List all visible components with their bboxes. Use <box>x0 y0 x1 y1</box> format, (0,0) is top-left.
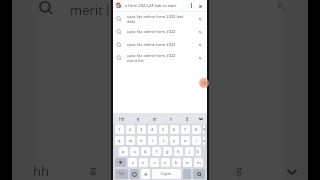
staticText: merit l <box>70 1 110 19</box>
button[interactable]: k <box>196 147 201 156</box>
staticText: 7 <box>184 127 187 132</box>
staticText: c <box>154 160 156 165</box>
staticText: र <box>170 116 172 122</box>
button[interactable]: Change language <box>141 169 150 179</box>
button[interactable]: ह <box>130 113 147 124</box>
staticText: hh <box>33 162 50 180</box>
button[interactable]: 1 <box>115 125 124 134</box>
button[interactable]: n <box>183 158 192 167</box>
staticText: upsc fac online form 2022 <box>127 53 176 58</box>
staticText: 9 <box>203 127 205 132</box>
button[interactable]: h <box>174 147 183 156</box>
button[interactable]: s <box>130 147 139 156</box>
button[interactable]: Insert suggestion <box>196 15 204 23</box>
button[interactable]: v <box>161 158 170 167</box>
button[interactable]: r <box>148 136 157 145</box>
button[interactable]: f <box>152 147 161 156</box>
button[interactable]: Insert suggestion <box>196 54 204 62</box>
staticText: r <box>152 138 154 143</box>
button[interactable]: 3 <box>137 125 146 134</box>
staticText: ढ <box>90 163 97 178</box>
button[interactable]: 7 <box>181 125 190 134</box>
staticText: 3 <box>140 127 143 132</box>
button[interactable]: e form 2023-24 kab se start <box>113 0 207 11</box>
button[interactable]: z <box>128 158 137 167</box>
button[interactable]: u <box>181 136 190 145</box>
button[interactable]: Insert suggestion <box>196 28 204 36</box>
button[interactable]: 2 <box>126 125 135 134</box>
staticText: q <box>118 138 121 143</box>
staticText: 6 <box>173 127 176 132</box>
button[interactable]: 9 <box>203 125 205 134</box>
button[interactable]: upsc fac online form 2022 <box>113 38 207 51</box>
button[interactable]: . <box>183 169 191 179</box>
button[interactable]: ?123 <box>115 169 128 179</box>
button[interactable]: c <box>150 158 159 167</box>
staticText: i <box>196 138 198 143</box>
button[interactable]: upsc fac online form 2022 last <box>113 12 207 25</box>
staticText: 8 <box>195 127 198 132</box>
button[interactable]: 8 <box>192 125 201 134</box>
staticText: z <box>132 160 134 165</box>
button[interactable]: t <box>159 136 168 145</box>
staticText: m <box>197 160 201 165</box>
button[interactable]: e <box>137 136 146 145</box>
button[interactable]: j <box>185 147 194 156</box>
button[interactable]: m <box>194 158 203 167</box>
button[interactable]: 4 <box>148 125 157 134</box>
staticText: 4 <box>151 127 154 132</box>
staticText: h <box>177 149 180 154</box>
button[interactable]: i <box>192 136 201 145</box>
button[interactable]: Emoji <box>130 169 139 179</box>
button[interactable]: Shift <box>115 158 126 167</box>
staticText: upsc fac online form 2022 <box>127 42 176 47</box>
staticText: ह <box>137 116 140 122</box>
button[interactable]: d <box>141 147 150 156</box>
button[interactable]: q <box>115 136 124 145</box>
staticText: हा <box>153 116 157 122</box>
button[interactable]: Space <box>152 169 181 179</box>
button[interactable]: Expand suggestions <box>195 113 207 124</box>
staticText: English <box>161 172 172 176</box>
staticText: hh <box>119 116 125 122</box>
staticText: t <box>163 138 165 143</box>
staticText: o <box>203 138 205 143</box>
staticText: g <box>166 149 169 154</box>
button[interactable]: y <box>170 136 179 145</box>
staticText: upsc fac online form 2022 last <box>127 14 184 19</box>
staticText: k <box>197 149 200 154</box>
staticText: merit list <box>127 58 144 63</box>
button[interactable]: Clear search <box>196 2 204 10</box>
staticText: x <box>142 160 145 165</box>
button[interactable]: 5 <box>159 125 168 134</box>
button[interactable]: upsc fac online form 2022 <box>113 25 207 38</box>
staticText: date <box>127 19 136 24</box>
button[interactable]: b <box>172 158 181 167</box>
button[interactable]: upsc fac online form 2022 <box>113 51 207 64</box>
staticText: u <box>184 138 187 143</box>
staticText: d <box>144 149 147 154</box>
button[interactable]: हा <box>147 113 163 124</box>
staticText: upsc fac online form 2022 <box>127 29 176 34</box>
staticText: y <box>173 138 176 143</box>
button[interactable]: Search <box>193 169 205 179</box>
staticText: w <box>129 138 133 143</box>
staticText: 5 <box>162 127 165 132</box>
button[interactable]: Insert suggestion <box>196 41 204 49</box>
staticText: b <box>175 160 178 165</box>
button[interactable]: w <box>126 136 135 145</box>
staticText: n <box>186 160 189 165</box>
staticText: . <box>186 172 188 177</box>
staticText: ?123 <box>118 172 125 176</box>
staticText: f <box>156 149 158 154</box>
button[interactable]: a <box>119 147 128 156</box>
button[interactable]: x <box>139 158 148 167</box>
button[interactable]: ई <box>179 113 195 124</box>
button[interactable]: र <box>163 113 179 124</box>
button[interactable]: g <box>163 147 172 156</box>
button[interactable]: o <box>203 136 205 145</box>
staticText: v <box>164 160 167 165</box>
staticText: e form 2023-24 kab se start <box>125 3 191 8</box>
button[interactable]: 6 <box>170 125 179 134</box>
button[interactable]: hh <box>113 113 130 124</box>
